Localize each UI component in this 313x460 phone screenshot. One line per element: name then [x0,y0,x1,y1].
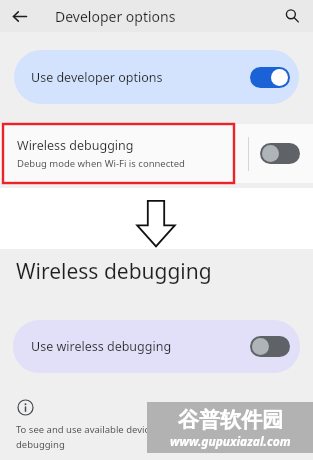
staticText: Use wireless debugging [31,338,172,355]
staticText: To see and use available devices, turn o… [16,423,236,436]
staticText: Wireless debugging [16,257,212,286]
staticText: Wireless debugging [17,137,134,154]
button[interactable]: Wireless debugging [0,124,313,183]
button[interactable]: Use developer options [14,50,299,104]
staticText: Developer options [55,7,176,26]
button[interactable]: Search [280,4,304,28]
staticText: 谷普软件园 [178,407,283,433]
button[interactable]: Use wireless debugging toggle, off [250,336,290,357]
button[interactable]: Use developer options toggle, on [250,67,290,88]
staticText: www.gupuxiazal.com [170,433,291,449]
button[interactable]: Back [7,4,31,28]
button[interactable]: Wireless debugging toggle, off [260,143,300,164]
staticText: Debug mode when Wi-Fi is connected [17,157,185,170]
staticText: debugging [16,438,65,451]
button[interactable]: Use wireless debugging [13,320,300,373]
staticText: Use developer options [31,69,163,86]
